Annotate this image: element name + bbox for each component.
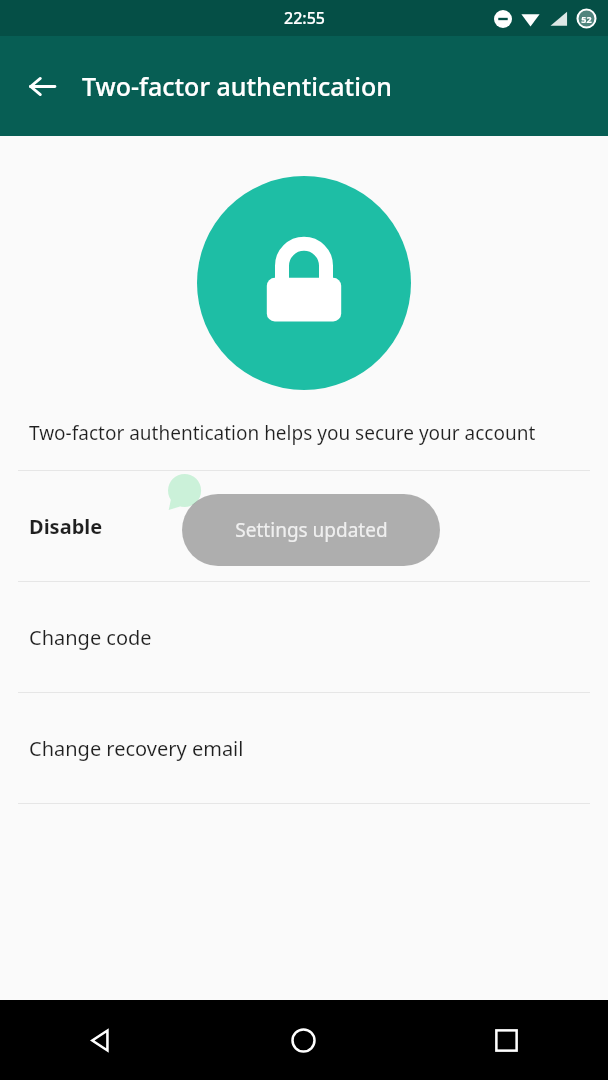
button[interactable]: Recent apps xyxy=(405,1000,608,1080)
staticText: 52 xyxy=(581,13,592,25)
button[interactable]: Disable xyxy=(0,471,608,581)
staticText: 22:55 xyxy=(284,7,325,29)
staticText: Change recovery email xyxy=(29,735,244,762)
staticText: Settings updated xyxy=(235,517,388,543)
button[interactable]: Change code xyxy=(0,582,608,692)
staticText: Two-factor authentication helps you secu… xyxy=(29,420,568,446)
staticText: Two-factor authentication xyxy=(82,69,392,103)
button[interactable]: Back xyxy=(0,1000,202,1080)
button[interactable]: Change recovery email xyxy=(0,693,608,803)
button[interactable]: Back xyxy=(14,58,70,114)
staticText: Change code xyxy=(29,624,152,651)
button[interactable]: Home xyxy=(202,1000,405,1080)
staticText: Disable xyxy=(29,513,103,540)
